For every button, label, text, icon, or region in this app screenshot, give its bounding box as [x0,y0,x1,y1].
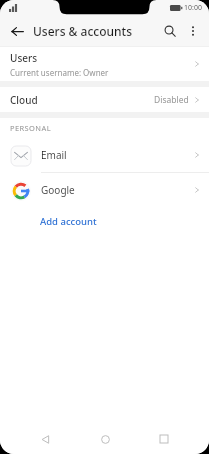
button[interactable]: Back [6,20,28,42]
button[interactable]: Cloud [0,87,209,112]
button[interactable]: Recent apps [149,424,179,454]
button[interactable]: Back [30,424,60,454]
staticText: Current username: Owner [10,67,109,78]
staticText: 10:00 [184,3,202,13]
button[interactable]: Add account [0,207,209,235]
button[interactable]: More options [182,20,204,42]
staticText: Users [10,51,38,65]
button[interactable]: Search [158,19,182,43]
staticText: Email [41,148,67,162]
staticText: Users & accounts [33,23,133,39]
staticText: PERSONAL [10,123,51,133]
staticText: Add account [40,215,97,228]
staticText: Google [41,183,75,197]
button[interactable]: Google [0,173,209,207]
button[interactable]: Home [90,424,120,454]
button[interactable]: Email [0,138,209,172]
staticText: Disabled [154,94,189,106]
staticText: Cloud [10,93,38,107]
button[interactable]: Users [0,47,209,81]
